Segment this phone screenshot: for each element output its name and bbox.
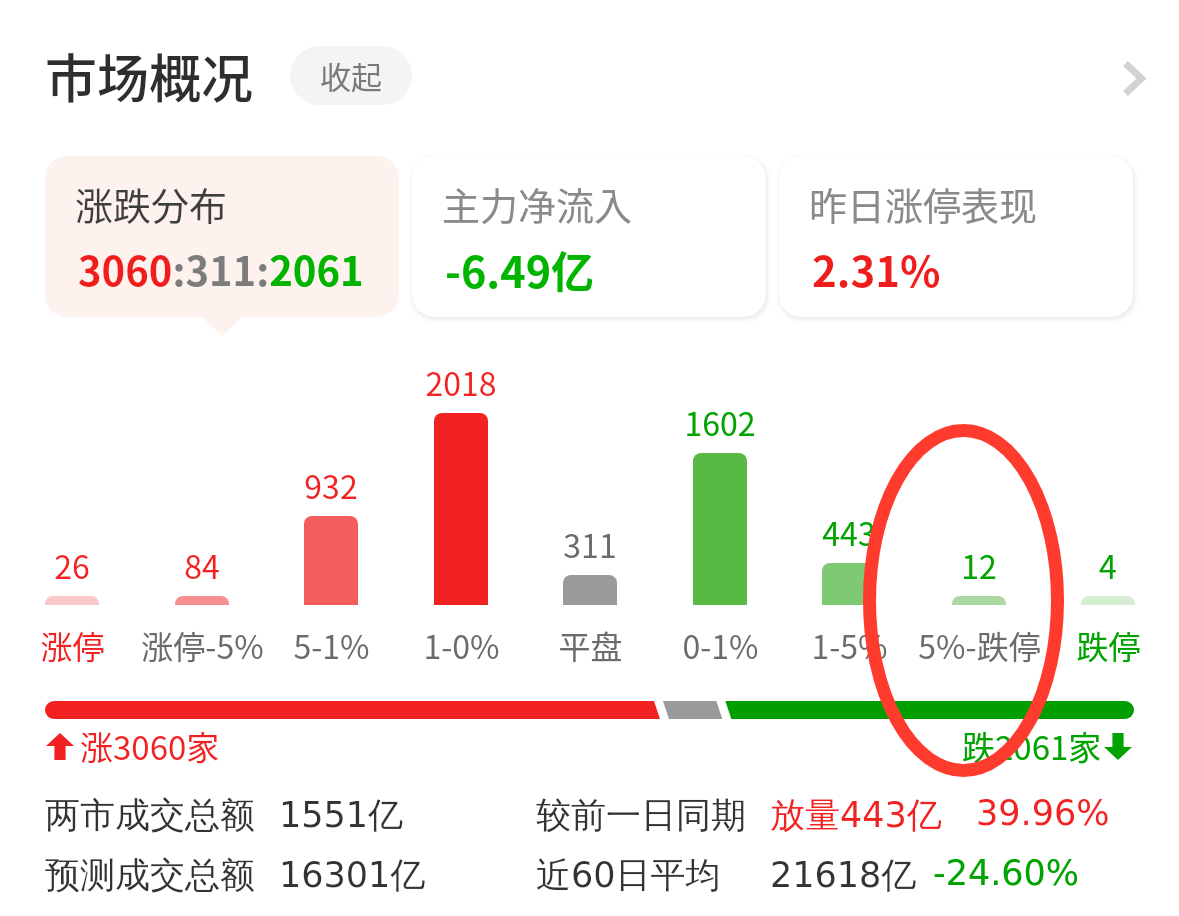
staticText: 5-1% [293, 622, 370, 668]
staticText: 昨日涨停表现 [809, 176, 1038, 231]
staticText: 0-1% [682, 622, 759, 668]
staticText: 涨跌分布 [75, 176, 228, 231]
staticText: 平盘 [558, 622, 623, 668]
staticText: 近60日平均 [536, 853, 721, 897]
staticText: 收起 [320, 53, 382, 98]
staticText: 1602 [684, 399, 756, 445]
other: 下跌 [1104, 733, 1132, 760]
staticText: 涨停 [40, 622, 105, 668]
staticText: 主力净流入 [442, 176, 633, 231]
staticText: -24.60% [933, 853, 1080, 894]
staticText: 16301亿 [279, 853, 426, 897]
button[interactable]: 收起 [290, 46, 412, 105]
staticText: 预测成交总额 [45, 853, 255, 897]
staticText: 443 [822, 509, 876, 555]
staticText: 1-5% [811, 622, 888, 668]
staticText: 2018 [425, 359, 497, 405]
staticText: 1-0% [423, 622, 500, 668]
staticText: 1551亿 [279, 793, 404, 837]
staticText: 21618亿 [770, 853, 917, 897]
button[interactable]: 主力净流入 [412, 156, 766, 317]
staticText: 5%-跌停 [918, 622, 1041, 668]
staticText: 2.31% [812, 238, 941, 299]
other: 上涨 [46, 733, 74, 760]
staticText: 311 [563, 521, 617, 567]
button[interactable]: 昨日涨停表现 [779, 156, 1133, 317]
button[interactable]: 展开详情 [1102, 47, 1164, 109]
staticText: 12 [961, 542, 997, 588]
staticText: 跌2061家 [962, 722, 1102, 770]
button[interactable]: 涨跌分布 [45, 156, 399, 317]
staticText: 932 [304, 462, 358, 508]
staticText: 涨停-5% [141, 622, 264, 668]
staticText: 跌停 [1076, 622, 1141, 668]
staticText: 市场概况 [45, 38, 254, 113]
staticText: 涨3060家 [80, 722, 220, 770]
staticText: 两市成交总额 [45, 793, 255, 837]
staticText: 4 [1099, 542, 1117, 588]
staticText: 放量443亿 [770, 793, 942, 837]
staticText: 较前一日同期 [536, 793, 746, 837]
staticText: 26 [54, 542, 90, 588]
staticText: -6.49亿 [445, 238, 594, 300]
staticText: 39.96% [976, 793, 1110, 834]
staticText: 84 [184, 542, 220, 588]
staticText: 3060:311:2061 [78, 240, 364, 298]
